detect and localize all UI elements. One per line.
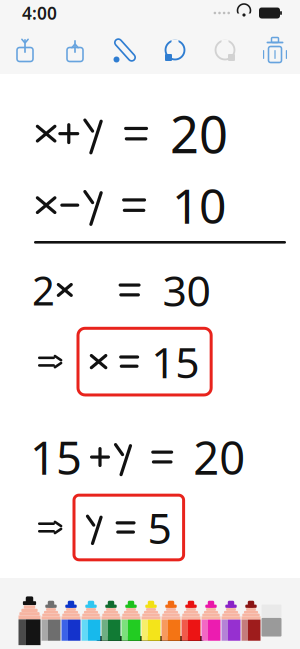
button[interactable]: Clear — [250, 30, 300, 70]
button[interactable]: Blue — [61, 597, 80, 643]
button[interactable]: Redo — [200, 30, 250, 70]
button[interactable]: Orange — [161, 597, 180, 643]
staticText: 4:00 — [22, 1, 57, 24]
button[interactable]: Undo — [150, 30, 200, 70]
staticText: 10 — [172, 173, 226, 237]
button[interactable]: Share — [0, 30, 50, 70]
button[interactable]: Yellow — [141, 597, 160, 643]
button[interactable]: Black — [18, 592, 40, 648]
button[interactable]: Magenta — [201, 597, 220, 643]
staticText: 20 — [193, 427, 245, 487]
button[interactable]: Draw — [100, 30, 150, 70]
button[interactable]: Save — [50, 30, 100, 70]
staticText: 20 — [170, 100, 228, 167]
staticText: 15 — [30, 427, 82, 487]
button[interactable]: Maroon — [241, 597, 260, 643]
staticText: 15 — [151, 333, 199, 390]
staticText: 30 — [163, 262, 211, 318]
staticText: 5 — [148, 499, 172, 556]
button[interactable]: Green — [121, 597, 140, 643]
staticText: 2 — [32, 263, 55, 316]
button[interactable]: Purple — [221, 597, 240, 643]
button[interactable]: Eraser — [261, 604, 281, 636]
button[interactable]: Dark green — [101, 597, 120, 643]
button[interactable]: Gray — [41, 597, 60, 643]
button[interactable]: Cyan — [81, 597, 100, 643]
button[interactable]: Red — [181, 597, 200, 643]
